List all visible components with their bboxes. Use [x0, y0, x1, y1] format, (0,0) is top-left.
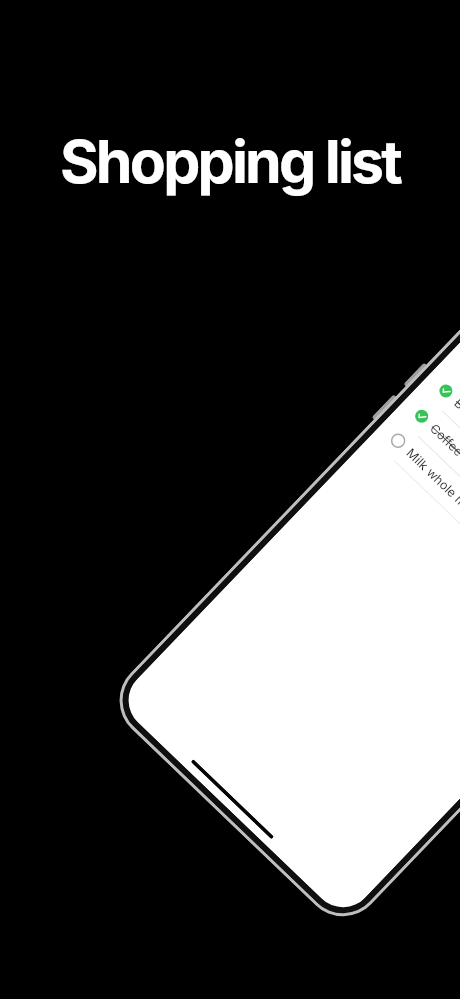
staticText: Shopping list	[60, 126, 401, 197]
button[interactable]: Milk whole milk	[369, 412, 460, 652]
button[interactable]: Bread	[417, 362, 460, 602]
button[interactable]: Coffee	[393, 387, 460, 627]
staticText: Coffee	[427, 421, 460, 459]
staticText: Milk whole milk	[403, 445, 460, 520]
staticText: Bread	[451, 396, 460, 431]
